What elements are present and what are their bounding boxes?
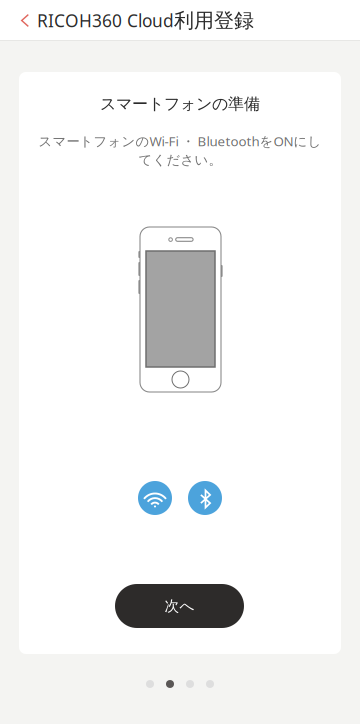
staticText: スマートフォンのWi-Fi ・ BluetoothをONにし (38, 132, 321, 150)
staticText: 次へ (164, 597, 194, 615)
staticText: RICOH360 Cloud利用登録 (37, 8, 254, 33)
staticText: スマートフォンの準備 (100, 94, 260, 114)
button[interactable]: Back (8, 0, 42, 41)
button[interactable]: 次へ (115, 584, 244, 628)
staticText: てください。 (138, 152, 221, 168)
